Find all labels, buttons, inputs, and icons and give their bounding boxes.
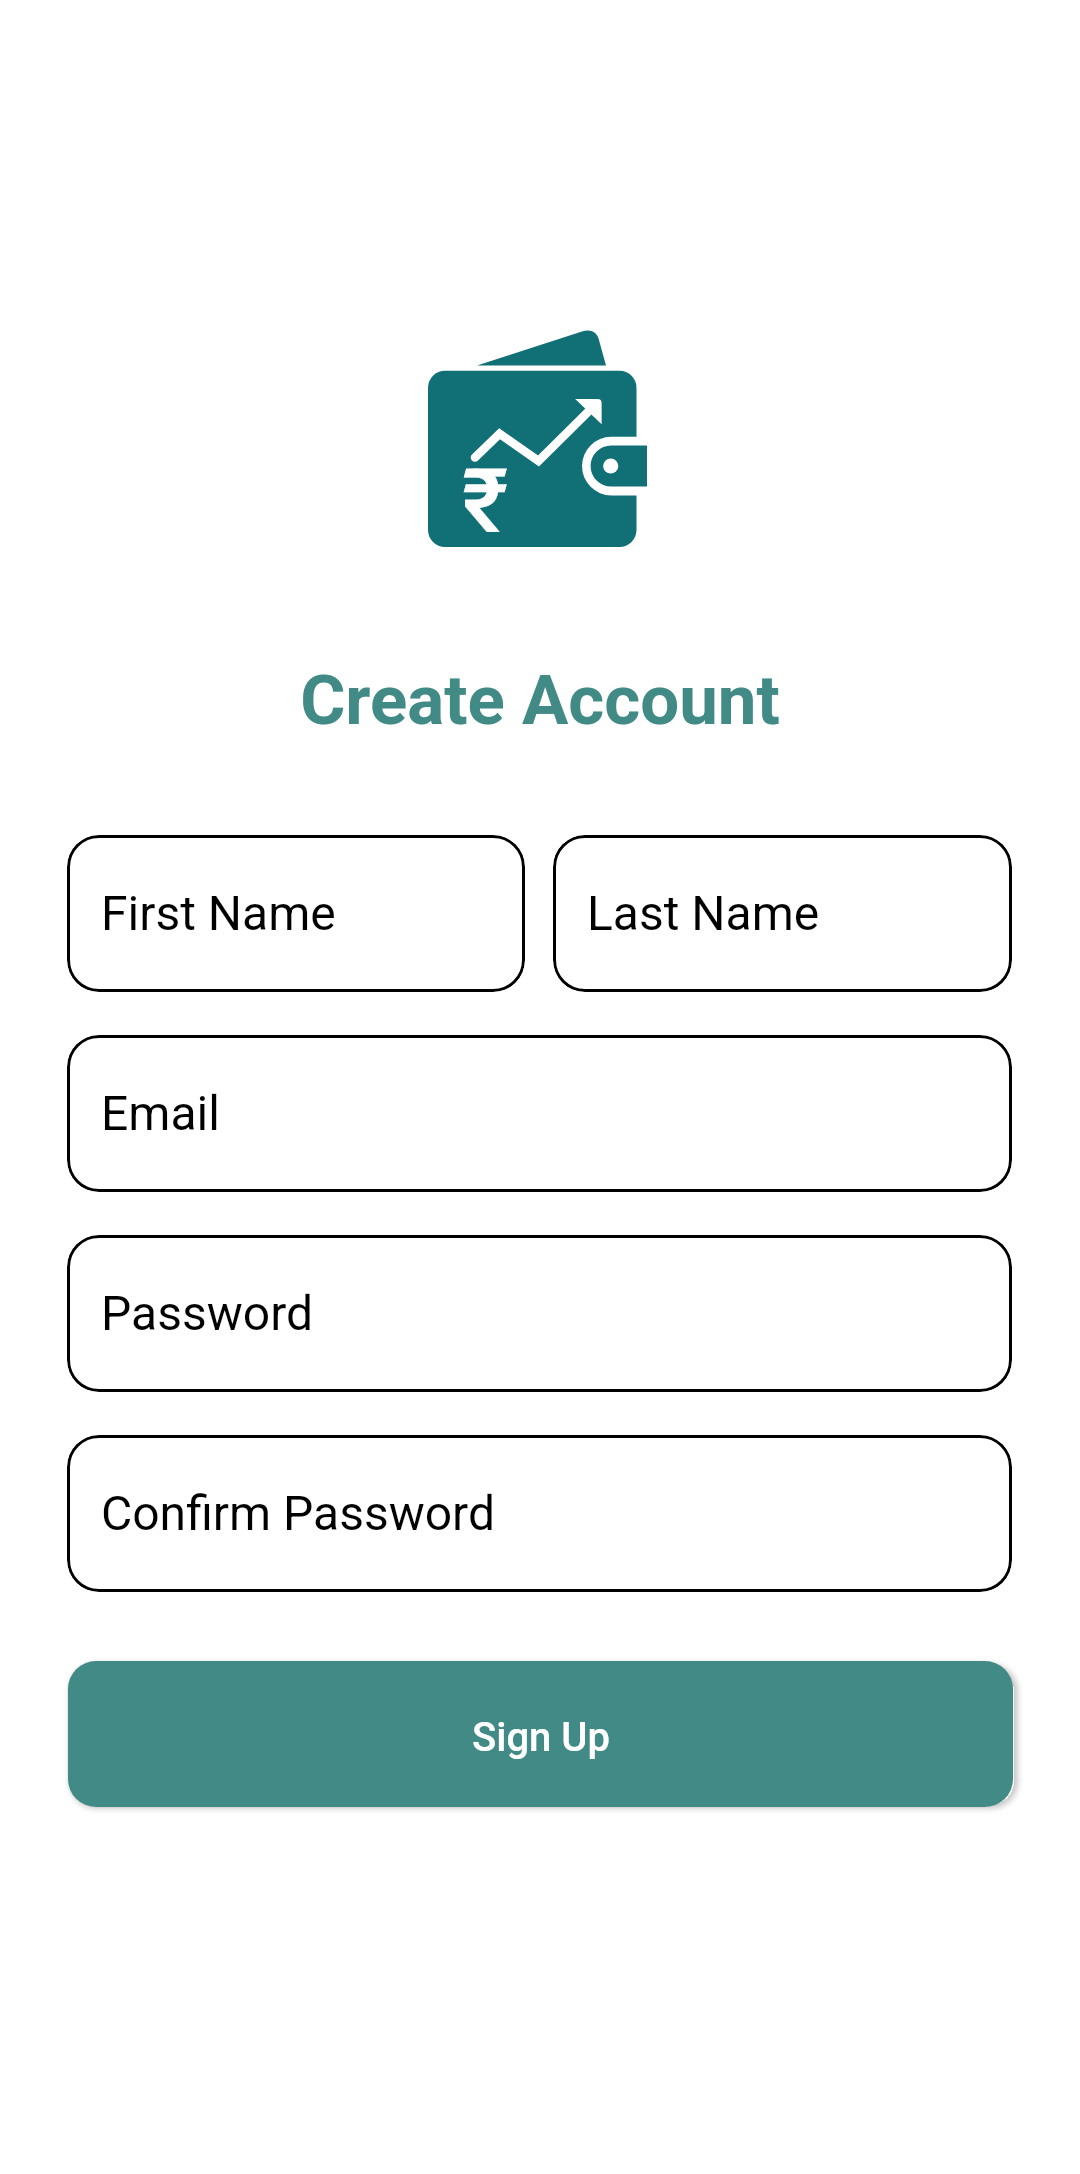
button[interactable]: First Name — [67, 835, 525, 992]
staticText: Confirm Password — [101, 1485, 496, 1541]
staticText: ₹ — [462, 449, 509, 553]
staticText: Password — [101, 1285, 314, 1341]
staticText: First Name — [101, 885, 336, 941]
button[interactable]: Email — [67, 1035, 1012, 1192]
button[interactable]: Confirm Password — [67, 1435, 1012, 1592]
staticText: Last Name — [587, 885, 820, 941]
staticText: Sign Up — [472, 1714, 610, 1761]
button[interactable]: Last Name — [553, 835, 1012, 992]
button[interactable]: Sign Up — [68, 1661, 1013, 1807]
staticText: Email — [101, 1085, 220, 1141]
staticText: Create Account — [300, 660, 780, 741]
other: Expense wallet app logo — [427, 331, 646, 547]
button[interactable]: Password — [67, 1235, 1012, 1392]
